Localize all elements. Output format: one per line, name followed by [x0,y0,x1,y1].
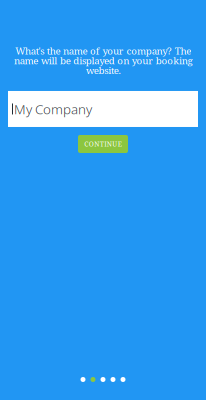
staticText: What's the name of your company? The nam… [14,44,192,77]
staticText: My Company [14,100,92,118]
button[interactable]: CONTINUE [78,135,128,153]
staticText: CONTINUE [84,139,122,149]
